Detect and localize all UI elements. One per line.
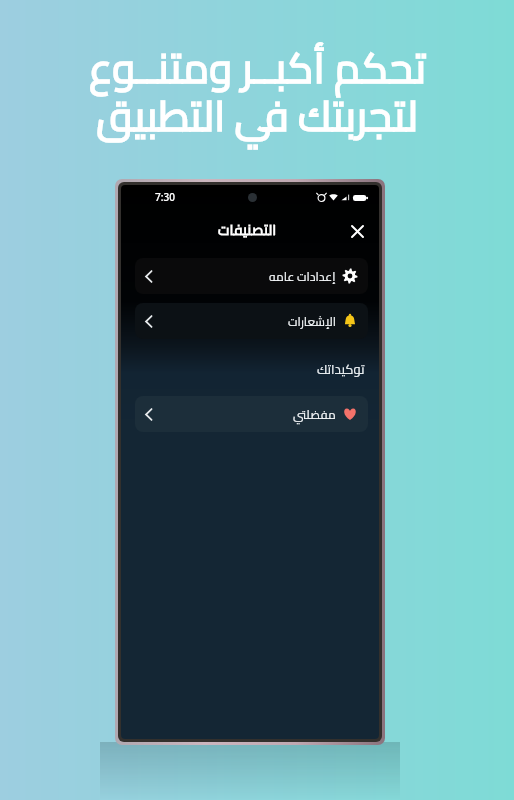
staticText: إعدادات عامه — [269, 265, 336, 287]
staticText: الإشعارات — [288, 310, 336, 332]
staticText: 7:30 — [155, 190, 175, 204]
staticText: التصنيفات — [218, 216, 277, 243]
staticText: لتجربتك في التطبيق — [96, 76, 418, 155]
button[interactable]: الإشعارات — [135, 303, 368, 339]
staticText: توكيداتك — [317, 357, 365, 381]
staticText: تحكم أكبــر ومتنــوع — [89, 28, 426, 107]
button[interactable]: Close — [346, 220, 368, 242]
button[interactable]: مفضلتي — [135, 396, 368, 432]
button[interactable]: إعدادات عامه — [135, 258, 368, 294]
staticText: مفضلتي — [293, 403, 336, 425]
